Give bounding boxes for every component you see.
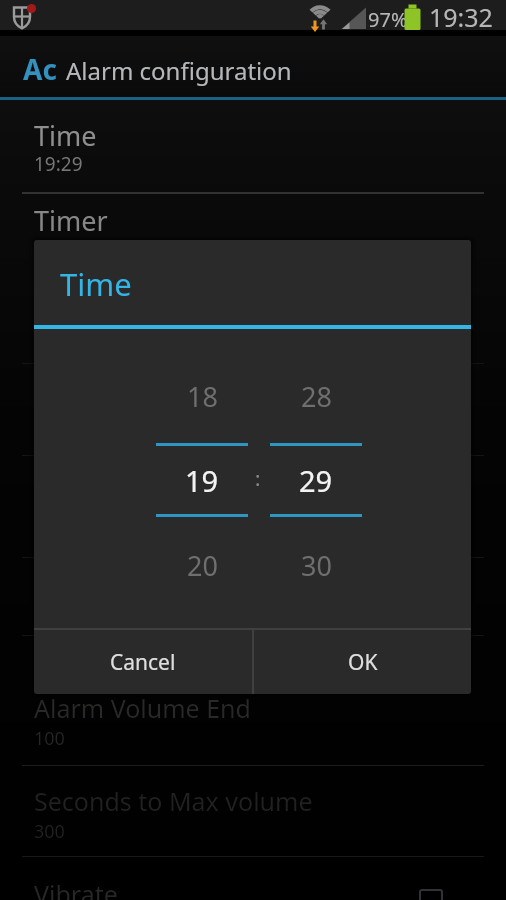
- staticText: 30: [301, 547, 332, 584]
- staticText: 19:32: [429, 0, 493, 34]
- staticText: 100: [34, 726, 65, 751]
- staticText: 18: [187, 378, 218, 415]
- button[interactable]: [270, 360, 362, 650]
- staticText: 20: [187, 547, 218, 584]
- staticText: Cancel: [110, 648, 176, 677]
- staticText: Alarm configuration: [66, 54, 292, 87]
- button[interactable]: OK: [254, 630, 471, 694]
- staticText: 29: [299, 461, 333, 500]
- button[interactable]: [0, 104, 506, 194]
- staticText: 28: [301, 378, 332, 415]
- staticText: Time: [60, 263, 132, 305]
- staticText: OK: [348, 648, 378, 677]
- staticText: :: [255, 465, 261, 492]
- staticText: Seconds to Max volume: [34, 784, 313, 818]
- staticText: Timer: [34, 202, 108, 239]
- staticText: 300: [34, 819, 65, 844]
- button[interactable]: Cancel: [34, 630, 252, 694]
- staticText: Vibrate: [34, 877, 118, 900]
- staticText: 19:29: [34, 151, 83, 177]
- staticText: 97%: [368, 6, 408, 33]
- staticText: Alarm Volume End: [34, 691, 251, 725]
- staticText: Time: [34, 117, 97, 154]
- button[interactable]: [156, 360, 248, 650]
- staticText: 19: [185, 461, 219, 500]
- staticText: Ac: [23, 50, 57, 88]
